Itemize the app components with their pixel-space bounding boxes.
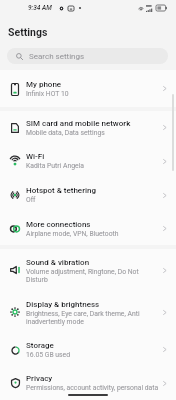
staticText: Mobile data, Data settings: [26, 129, 105, 137]
staticText: More connections: [26, 220, 91, 229]
staticText: Volume adjustment, Ringtone, Do Not Dist…: [26, 268, 159, 283]
staticText: 16.05 GB used: [26, 351, 71, 359]
staticText: Display & brightness: [26, 300, 100, 309]
button[interactable]: Display & brightness: [0, 291, 176, 333]
staticText: Search settings: [29, 52, 85, 61]
button[interactable]: My phone: [0, 70, 176, 107]
staticText: Infinix HOT 10: [26, 90, 69, 98]
staticText: Sound & vibration: [26, 258, 90, 267]
staticText: Settings: [8, 26, 48, 38]
staticText: Storage: [26, 341, 54, 350]
staticText: 9:34 AM: [28, 4, 52, 12]
button[interactable]: Storage: [0, 333, 176, 366]
button[interactable]: Privacy: [0, 366, 176, 400]
staticText: Off: [26, 196, 36, 204]
button[interactable]: SIM card and mobile network: [0, 111, 176, 144]
button[interactable]: More connections: [0, 212, 176, 245]
staticText: Airplane mode, VPN, Bluetooth: [26, 230, 119, 238]
staticText: Kadita Putri Angela: [26, 162, 84, 170]
button[interactable]: Sound & vibration: [0, 249, 176, 291]
button[interactable]: Search settings: [7, 48, 168, 64]
button[interactable]: Wi-Fi: [0, 144, 176, 178]
staticText: My phone: [26, 80, 62, 89]
staticText: Wi-Fi: [26, 152, 45, 161]
staticText: Permissions, account activity, personal …: [26, 384, 159, 392]
staticText: Privacy: [26, 374, 53, 383]
staticText: SIM card and mobile network: [26, 119, 131, 128]
staticText: Brightness, Eye care, Dark theme, Anti i…: [26, 310, 159, 325]
button[interactable]: Hotspot & tethering: [0, 178, 176, 212]
staticText: Hotspot & tethering: [26, 186, 96, 195]
